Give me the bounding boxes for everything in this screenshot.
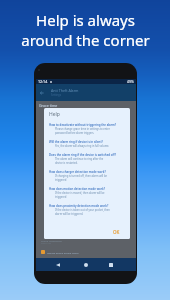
staticText: OK (113, 229, 120, 235)
staticText: 49% (127, 79, 134, 84)
button[interactable]: Recents (105, 258, 117, 271)
staticText: Grace time (39, 103, 58, 108)
button[interactable]: Back (52, 258, 64, 271)
button[interactable]: Navigate up (39, 90, 45, 96)
button[interactable]: OK (113, 229, 130, 239)
staticText: Will the alarm ring if device is in sile… (49, 140, 103, 144)
staticText: Vibrate device during alarm (47, 251, 79, 254)
staticText: How does proximity detection mode work? (49, 204, 109, 208)
staticText: Anti Theft Alarm (51, 88, 79, 93)
staticText: If the device is moved, then alarm will … (55, 191, 105, 199)
staticText: Settings (51, 93, 61, 97)
staticText: If the device is taken out of your pocke… (55, 208, 110, 216)
staticText: Please change grace time in settings to … (55, 127, 110, 135)
staticText: Sound notification (41, 239, 62, 242)
staticText: Switch off (41, 242, 52, 245)
staticText: 12:14 (38, 79, 48, 84)
staticText: If charging is turned off, then alarm wi… (55, 174, 107, 182)
staticText: Yes, the alarm will always ring in full … (55, 144, 110, 148)
staticText: Help (49, 111, 60, 118)
staticText: Help is always around the corner (21, 10, 150, 50)
button[interactable]: Home (80, 258, 92, 271)
staticText: How to deactivate without triggering the… (49, 123, 117, 127)
staticText: The alarm will continue to ring after th… (55, 157, 104, 165)
staticText: How does charger detection mode work? (49, 170, 106, 174)
staticText: How does motion detection mode work? (49, 187, 105, 191)
staticText: Does the alarm ring if the device is swi… (49, 153, 117, 157)
